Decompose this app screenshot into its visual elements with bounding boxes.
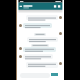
button[interactable] <box>26 15 58 20</box>
button[interactable] <box>26 62 58 68</box>
button[interactable] <box>23 47 56 52</box>
button[interactable] <box>27 37 58 42</box>
button[interactable] <box>23 54 53 59</box>
button[interactable] <box>23 23 52 28</box>
